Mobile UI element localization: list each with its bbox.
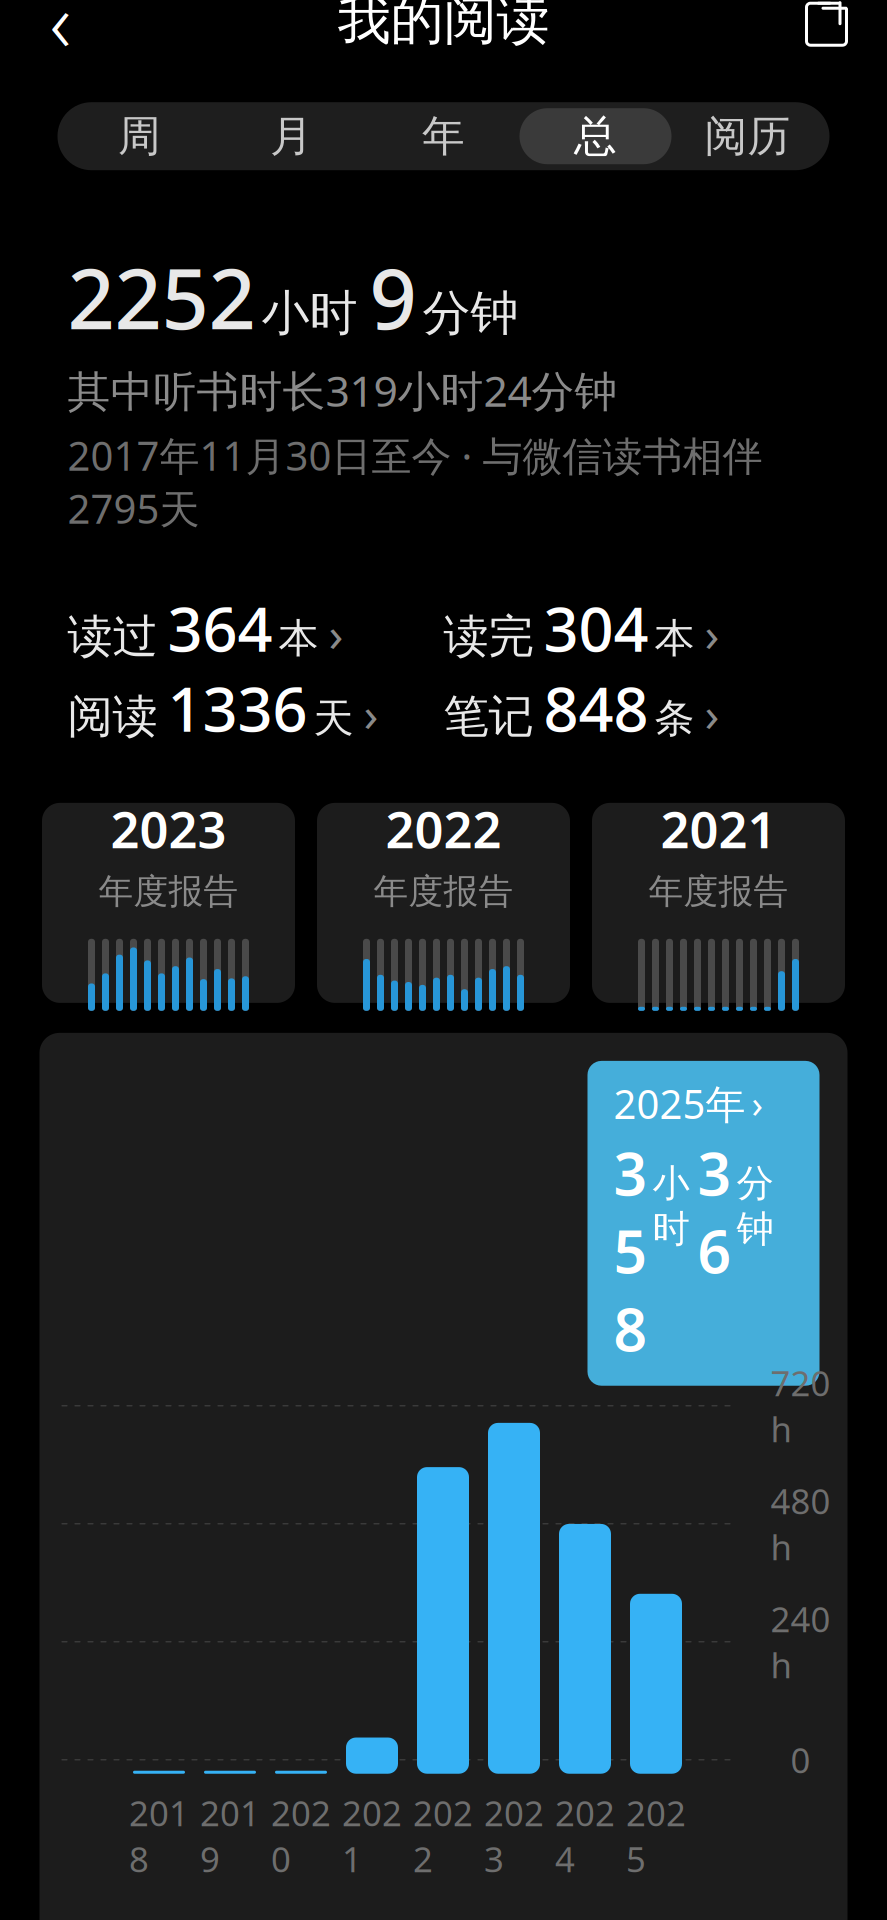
staticText: › xyxy=(704,601,719,665)
staticText: 阅历 xyxy=(704,110,790,162)
staticText: 阅读 xyxy=(67,689,157,744)
staticText: › xyxy=(751,1079,763,1128)
staticText: 2021 xyxy=(660,795,776,862)
staticText: 2019 xyxy=(200,1790,260,1882)
staticText: 2017年11月30日至今 · 与微信读书相伴2795天 xyxy=(67,429,762,535)
staticText: 2020 xyxy=(271,1790,331,1882)
button[interactable]: 月 xyxy=(215,108,367,164)
button[interactable]: 读过 xyxy=(67,599,443,657)
staticText: 9 xyxy=(369,242,416,352)
staticText: 小时 xyxy=(652,1160,689,1252)
staticText: 月 xyxy=(270,110,313,162)
staticText: › xyxy=(363,681,378,745)
staticText: 年度报告 xyxy=(98,870,238,913)
staticText: ‹ xyxy=(49,0,71,75)
staticText: 本 xyxy=(278,614,318,663)
staticText: 1336 xyxy=(167,667,307,749)
button[interactable]: 2025年 xyxy=(587,1061,819,1386)
button[interactable]: 分享 xyxy=(787,0,865,59)
button[interactable]: 返回 xyxy=(21,0,99,59)
staticText: › xyxy=(704,681,719,745)
button[interactable]: 阅读 xyxy=(67,679,443,737)
staticText: 240h xyxy=(770,1596,830,1688)
button[interactable]: 2023 xyxy=(42,803,295,1003)
staticText: 年度报告 xyxy=(373,870,513,913)
staticText: 其中听书时长319小时24分钟 xyxy=(67,362,617,419)
staticText: 读过 xyxy=(67,609,157,664)
staticText: 364 xyxy=(167,587,272,669)
staticText: 笔记 xyxy=(443,689,533,744)
staticText: 年 xyxy=(422,110,465,162)
staticText: 2023 xyxy=(484,1790,544,1882)
staticText: 本 xyxy=(654,614,694,663)
button[interactable]: 周 xyxy=(63,108,215,164)
staticText: 读完 xyxy=(443,609,533,664)
button[interactable]: 读完 xyxy=(443,599,819,657)
button[interactable]: 年 xyxy=(367,108,519,164)
staticText: 480h xyxy=(770,1478,830,1570)
staticText: 分钟 xyxy=(422,284,518,343)
staticText: 304 xyxy=(543,587,648,669)
staticText: 总 xyxy=(574,110,617,162)
staticText: 我的阅读 xyxy=(337,0,549,53)
staticText: 848 xyxy=(543,667,648,749)
staticText: 2022 xyxy=(385,795,501,862)
staticText: 2252 xyxy=(67,242,255,352)
button[interactable]: 笔记 xyxy=(443,679,819,737)
button[interactable]: 2021 xyxy=(592,803,845,1003)
button[interactable]: 阅历 xyxy=(671,108,823,164)
button[interactable]: 总 xyxy=(519,108,671,164)
staticText: 条 xyxy=(654,694,694,743)
staticText: 720h xyxy=(770,1360,830,1452)
staticText: 小时 xyxy=(261,284,357,343)
staticText: 358 xyxy=(613,1134,647,1368)
staticText: 2021 xyxy=(342,1790,402,1882)
staticText: 2025年 xyxy=(613,1077,745,1130)
staticText: 2023 xyxy=(110,795,226,862)
staticText: 2025 xyxy=(626,1790,686,1882)
staticText: 2024 xyxy=(555,1790,615,1882)
staticText: 36 xyxy=(697,1134,731,1290)
staticText: 天 xyxy=(313,694,353,743)
staticText: 0 xyxy=(790,1737,810,1783)
staticText: 周 xyxy=(118,110,161,162)
button[interactable]: 2022 xyxy=(317,803,570,1003)
staticText: 2018 xyxy=(129,1790,189,1882)
staticText: › xyxy=(328,601,343,665)
staticText: 分钟 xyxy=(736,1160,773,1252)
staticText: 年度报告 xyxy=(648,870,788,913)
staticText: 2022 xyxy=(413,1790,473,1882)
